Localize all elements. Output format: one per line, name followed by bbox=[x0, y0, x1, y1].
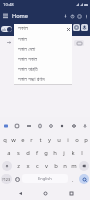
button[interactable]: Navigate bbox=[6, 40, 12, 45]
staticText: f bbox=[36, 149, 38, 157]
staticText: English bbox=[38, 176, 52, 181]
button[interactable]: y bbox=[45, 133, 54, 146]
staticText: Home bbox=[12, 12, 28, 20]
button[interactable]: সকাল বেলা bbox=[18, 44, 70, 54]
button[interactable]: r bbox=[27, 133, 36, 146]
button[interactable]: Voice search bbox=[81, 24, 88, 31]
button[interactable]: j bbox=[59, 146, 68, 159]
button[interactable]: Translate bbox=[69, 121, 78, 130]
button[interactable]: Emoji bbox=[13, 174, 21, 184]
button[interactable]: Clipboard bbox=[35, 121, 44, 130]
staticText: x bbox=[26, 162, 30, 170]
staticText: o bbox=[75, 136, 79, 144]
staticText: 10:48 bbox=[3, 2, 14, 8]
button[interactable]: Keyboard options bbox=[1, 121, 10, 130]
staticText: z bbox=[17, 162, 20, 170]
button[interactable]: Settings bbox=[46, 121, 55, 130]
button[interactable]: w bbox=[9, 133, 18, 146]
button[interactable]: z bbox=[13, 159, 23, 172]
button[interactable]: s bbox=[14, 146, 23, 159]
staticText: k bbox=[71, 149, 75, 157]
button[interactable]: Back bbox=[14, 187, 26, 199]
staticText: m bbox=[71, 162, 77, 170]
staticText: সকাল আরতি bbox=[18, 66, 38, 73]
staticText: সকাল সকাল bbox=[18, 56, 38, 63]
staticText: l bbox=[81, 149, 83, 157]
button[interactable]: Downloads bbox=[62, 11, 69, 21]
button[interactable]: i bbox=[63, 133, 72, 146]
button[interactable]: l bbox=[77, 146, 86, 159]
button[interactable]: g bbox=[41, 146, 50, 159]
staticText: i bbox=[67, 136, 69, 144]
staticText: ?123 bbox=[2, 177, 11, 182]
staticText: b bbox=[54, 162, 58, 170]
button[interactable]: Tabs bbox=[76, 11, 83, 21]
button[interactable]: Clear bbox=[65, 26, 71, 32]
staticText: r bbox=[30, 136, 33, 144]
staticText: g bbox=[44, 149, 48, 157]
staticText: n bbox=[63, 162, 67, 170]
button[interactable]: f bbox=[32, 146, 41, 159]
button[interactable]: Search bbox=[79, 174, 89, 184]
button[interactable]: সকাল সন্ধ্যা প্রণাম bbox=[18, 74, 70, 84]
button[interactable]: English bbox=[22, 174, 68, 183]
staticText: v bbox=[45, 162, 48, 170]
button[interactable]: q bbox=[0, 133, 9, 146]
staticText: সকাল bbox=[18, 37, 27, 42]
button[interactable]: Google Lens bbox=[73, 24, 80, 31]
button[interactable]: t bbox=[36, 133, 45, 146]
button[interactable]: More options bbox=[83, 11, 90, 21]
staticText: c bbox=[36, 162, 39, 170]
staticText: . bbox=[72, 176, 74, 183]
staticText: p bbox=[84, 136, 88, 144]
button[interactable]: সকাল bbox=[18, 34, 70, 44]
staticText: u bbox=[57, 136, 61, 144]
button[interactable]: b bbox=[51, 159, 60, 172]
button[interactable]: Theme bbox=[57, 121, 66, 130]
staticText: a bbox=[7, 149, 11, 157]
button[interactable]: k bbox=[68, 146, 77, 159]
staticText: d bbox=[26, 149, 30, 157]
button[interactable]: x bbox=[23, 159, 33, 172]
button[interactable]: Stickers bbox=[12, 121, 21, 130]
staticText: q bbox=[3, 136, 7, 144]
staticText: s bbox=[17, 149, 20, 157]
staticText: ab bbox=[2, 27, 6, 32]
button[interactable]: h bbox=[50, 146, 59, 159]
button[interactable]: ?123 bbox=[1, 174, 12, 184]
button[interactable]: Toggle bbox=[1, 26, 12, 32]
button[interactable]: . bbox=[69, 174, 77, 184]
staticText: e bbox=[21, 136, 25, 144]
button[interactable]: v bbox=[42, 159, 51, 172]
button[interactable]: n bbox=[60, 159, 69, 172]
staticText: সকাল সন্ধ্যা প্রণাম bbox=[18, 76, 45, 83]
button[interactable]: Microphone bbox=[80, 121, 89, 130]
button[interactable]: GIF bbox=[24, 121, 33, 130]
button[interactable]: Backspace bbox=[79, 161, 89, 171]
staticText: সকাল bbox=[18, 26, 28, 32]
button[interactable]: Home bbox=[39, 187, 51, 199]
button[interactable]: o bbox=[72, 133, 81, 146]
button[interactable]: e bbox=[18, 133, 27, 146]
button[interactable]: m bbox=[69, 159, 78, 172]
button[interactable]: p bbox=[81, 133, 90, 146]
staticText: y bbox=[48, 136, 51, 144]
button[interactable]: Translate bbox=[74, 40, 84, 46]
button[interactable]: সকাল আরতি bbox=[18, 64, 70, 74]
button[interactable]: a bbox=[4, 146, 14, 159]
button[interactable]: c bbox=[33, 159, 42, 172]
button[interactable]: Shift bbox=[2, 161, 12, 171]
staticText: সকাল বেলা bbox=[18, 46, 36, 53]
staticText: h bbox=[53, 149, 57, 157]
staticText: t bbox=[39, 136, 42, 144]
button[interactable]: Share bbox=[69, 11, 76, 21]
button[interactable]: সকাল সকাল bbox=[18, 54, 70, 64]
button[interactable]: d bbox=[23, 146, 32, 159]
button[interactable]: u bbox=[54, 133, 63, 146]
staticText: j bbox=[63, 149, 65, 157]
staticText: w bbox=[11, 136, 16, 144]
button[interactable]: Recents bbox=[65, 187, 77, 199]
button[interactable]: Menu bbox=[1, 11, 10, 20]
